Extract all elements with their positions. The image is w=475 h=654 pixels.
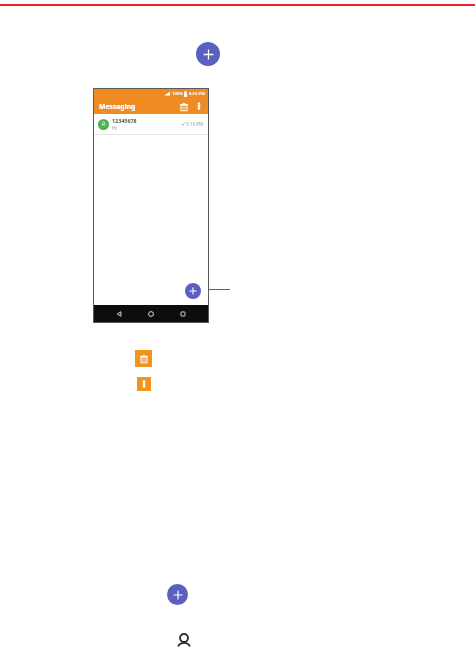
button[interactable]: Contacts xyxy=(174,632,194,652)
staticText: 100% xyxy=(172,91,183,97)
button[interactable]: New message xyxy=(196,42,220,66)
staticText: 12345678 xyxy=(112,117,137,124)
button[interactable]: Back xyxy=(112,307,126,321)
button[interactable]: Home xyxy=(144,307,158,321)
button[interactable]: New message xyxy=(167,584,188,605)
button[interactable]: Delete xyxy=(135,350,152,367)
button[interactable]: More options xyxy=(137,377,151,391)
button[interactable]: 12345678 xyxy=(94,114,208,135)
staticText: Messaging xyxy=(99,102,136,111)
button[interactable]: New message xyxy=(185,283,201,299)
staticText: 5:15 PM xyxy=(189,91,205,97)
staticText: Hi xyxy=(112,125,117,132)
button[interactable]: Delete xyxy=(178,101,189,112)
button[interactable]: More options xyxy=(194,101,204,111)
button[interactable]: Recents xyxy=(176,307,190,321)
staticText: 5:15 PM xyxy=(186,121,204,127)
